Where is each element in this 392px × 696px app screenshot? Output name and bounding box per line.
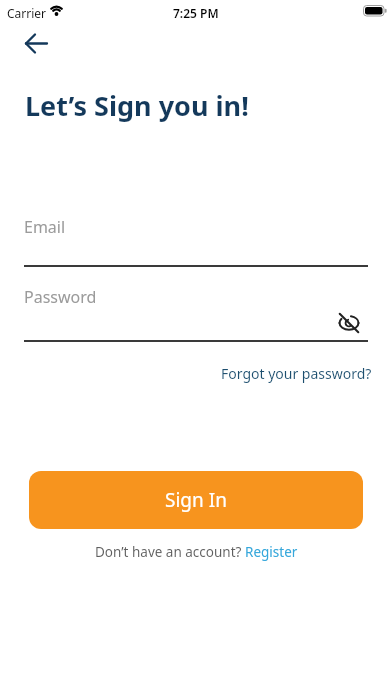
button[interactable] — [335, 309, 363, 337]
button[interactable]: Forgot your password? — [221, 364, 372, 383]
button[interactable]: Don’t have an account? — [95, 543, 298, 561]
staticText: Sign In — [165, 487, 227, 513]
button[interactable] — [14, 27, 58, 59]
staticText: Register — [245, 543, 298, 561]
staticText: Password — [24, 286, 97, 308]
staticText: Don’t have an account? — [95, 543, 245, 561]
staticText: 7:25 PM — [173, 5, 219, 21]
button[interactable]: Sign In — [29, 471, 363, 529]
staticText: Let’s Sign you in! — [25, 87, 249, 124]
staticText: Carrier — [7, 5, 47, 21]
staticText: Email — [24, 216, 66, 238]
